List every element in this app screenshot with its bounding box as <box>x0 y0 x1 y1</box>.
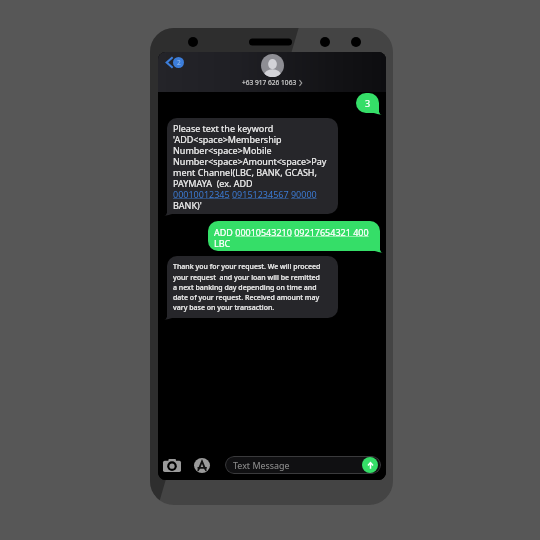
button[interactable]: ADD 00010543210 09217654321 400 LBC <box>208 221 380 251</box>
button[interactable]: Back <box>164 54 186 71</box>
staticText: 3 <box>365 97 371 109</box>
button[interactable]: Please text the keyword 'ADD<space>Membe… <box>167 118 338 214</box>
staticText: +63 917 626 1063 <box>242 78 297 87</box>
staticText: 2 <box>177 58 181 67</box>
button[interactable]: Apps <box>192 455 212 475</box>
staticText: Thank you for your request. We will proc… <box>173 262 321 312</box>
button[interactable]: Camera <box>161 456 182 475</box>
staticText: Text Message <box>233 459 290 471</box>
staticText: ADD 00010543210 09217654321 400 LBC <box>214 226 369 249</box>
button[interactable]: 3 <box>356 93 379 113</box>
button[interactable]: Send <box>362 457 378 473</box>
button[interactable]: Thank you for your request. We will proc… <box>167 256 338 318</box>
button[interactable]: Text Message <box>225 456 381 474</box>
staticText: Please text the keyword 'ADD<space>Membe… <box>173 122 327 211</box>
